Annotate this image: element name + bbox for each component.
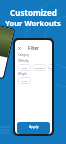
button[interactable]: Close [17,46,22,51]
staticText: Your Workouts [5,18,61,28]
staticText: 10 kg [21,79,28,82]
staticText: Medium [35,66,45,69]
staticText: Filter [28,45,40,51]
staticText: Easy [22,66,28,69]
staticText: Weight [18,72,27,76]
staticText: Apply [29,124,39,129]
button[interactable]: Medium [33,64,46,71]
button[interactable]: Easy [18,64,31,71]
button[interactable]: Apply [17,122,50,134]
staticText: Hard [49,66,52,69]
staticText: Customized [10,7,57,18]
button[interactable]: 10 kg [18,77,31,84]
button[interactable]: Hard [48,64,52,71]
staticText: Category [18,53,30,57]
staticText: Difficulty [18,59,29,63]
